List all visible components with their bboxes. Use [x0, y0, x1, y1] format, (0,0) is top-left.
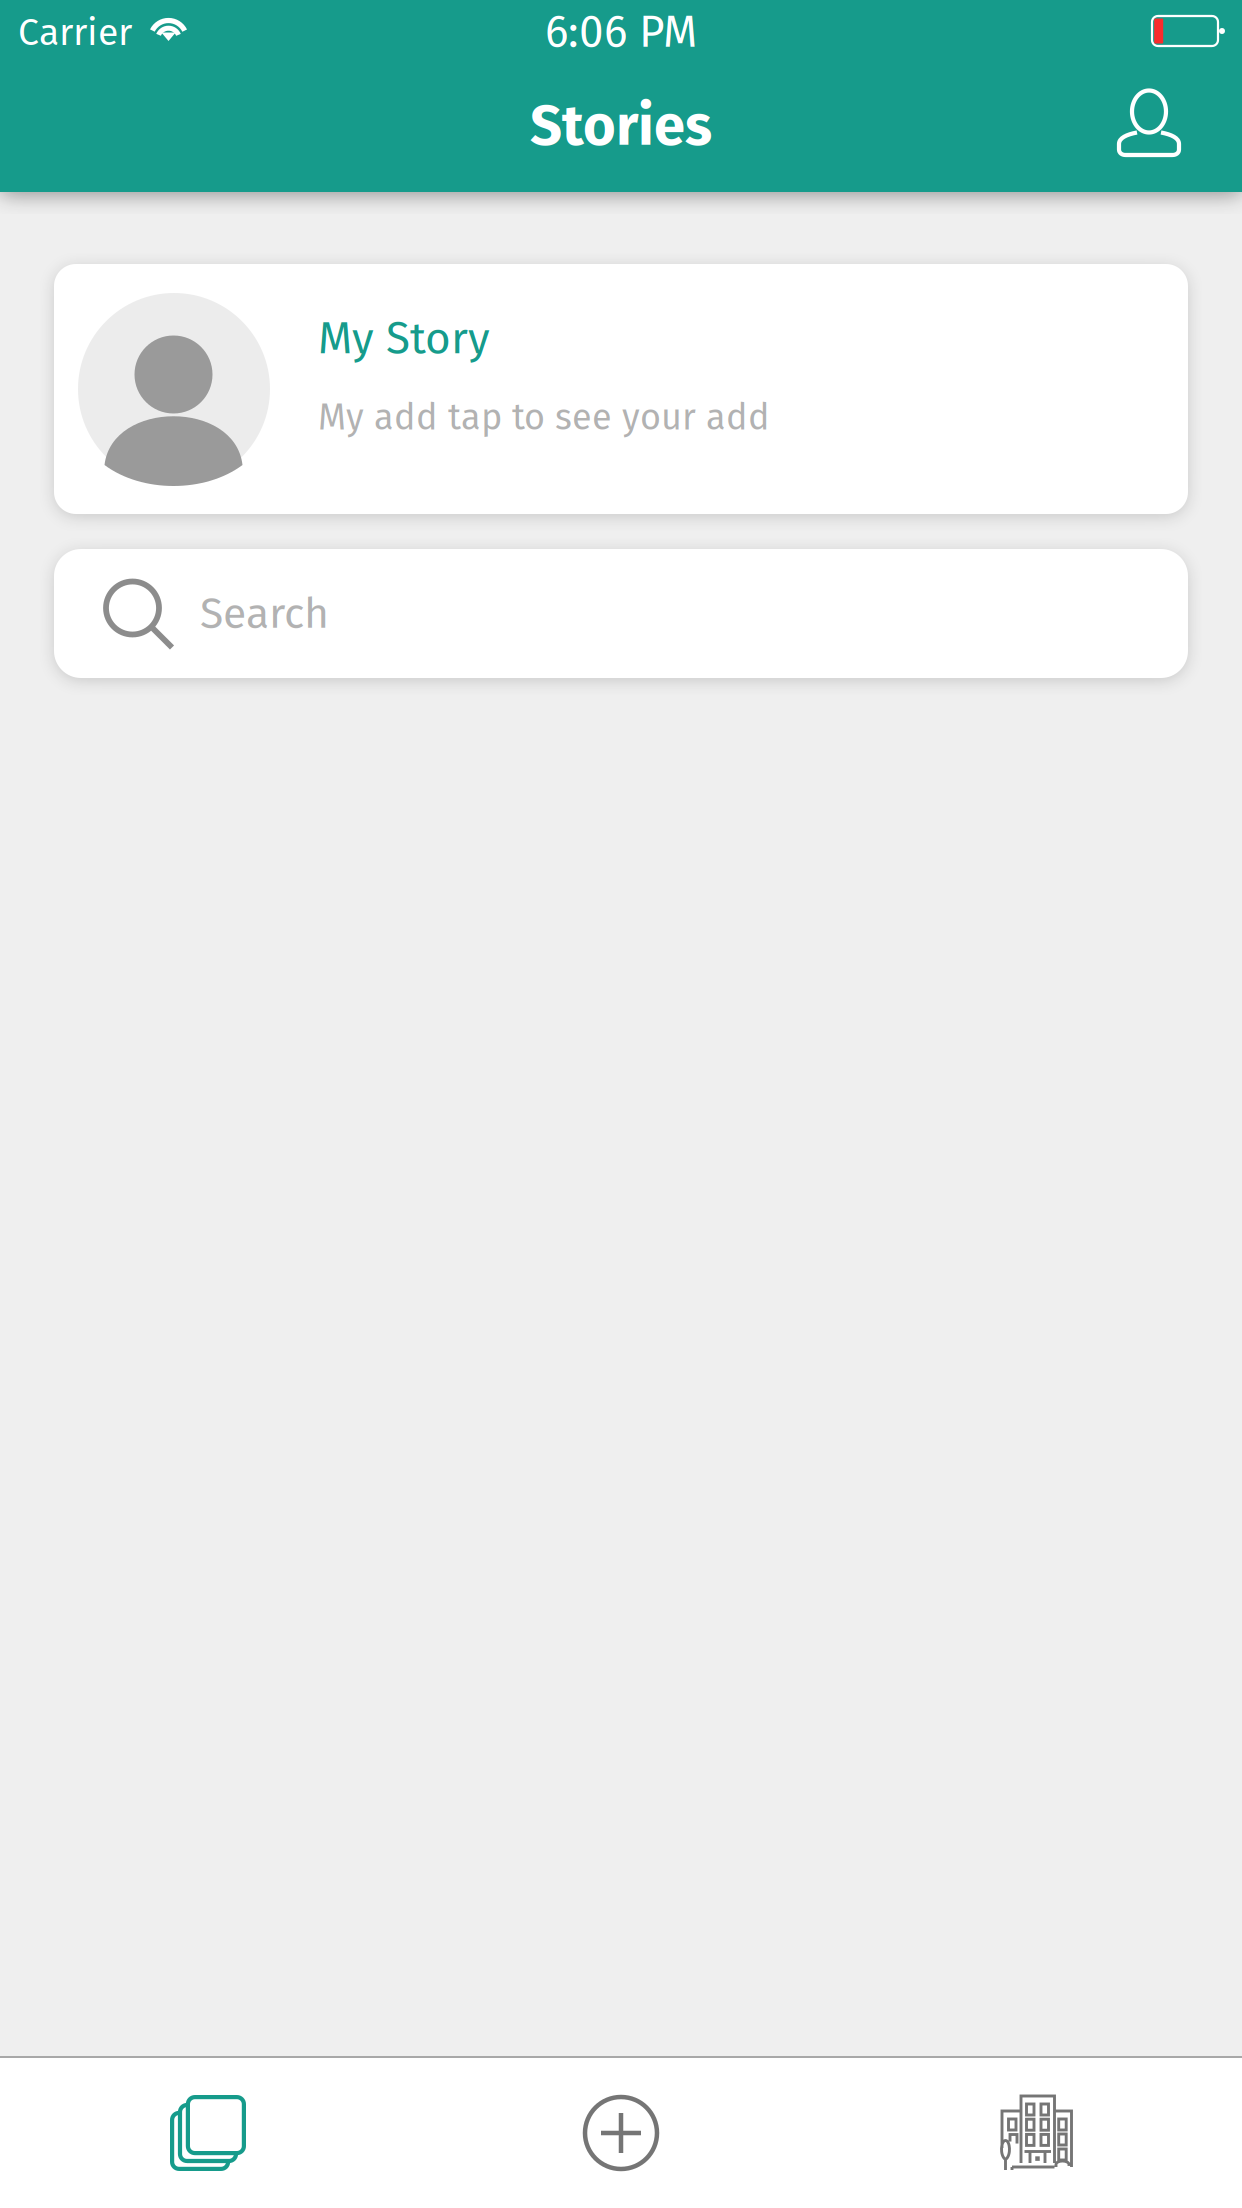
button[interactable]: My Story: [54, 264, 1188, 514]
button[interactable]: Profile: [1093, 60, 1205, 192]
staticText: Stories: [530, 92, 712, 160]
staticText: My Story: [318, 312, 490, 365]
button[interactable]: Add story: [414, 2058, 828, 2208]
staticText: Search: [200, 588, 329, 639]
button[interactable]: Places: [828, 2058, 1242, 2208]
button[interactable]: Search: [54, 549, 1188, 678]
staticText: Carrier: [18, 10, 132, 55]
button[interactable]: Stories: [0, 2058, 414, 2208]
staticText: 6:06 PM: [545, 6, 697, 58]
staticText: My add tap to see your add: [318, 396, 770, 439]
